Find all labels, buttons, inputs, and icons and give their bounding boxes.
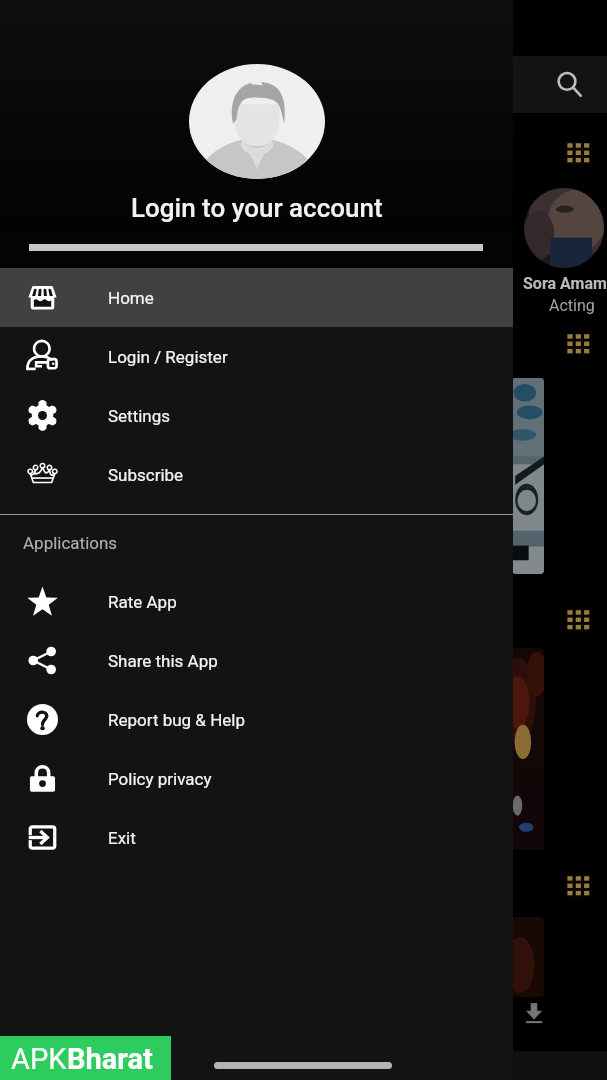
staticText: Login to your account: [131, 193, 383, 223]
staticText: Exit: [108, 828, 136, 848]
button[interactable]: Policy privacy: [0, 749, 513, 808]
staticText: Home: [108, 288, 154, 308]
staticText: Applications: [23, 533, 118, 553]
button[interactable]: Login / Register: [0, 327, 513, 386]
staticText: Report bug & Help: [108, 710, 245, 730]
staticText: Settings: [108, 406, 171, 426]
button[interactable]: APK: [0, 1036, 171, 1080]
staticText: Subscribe: [108, 465, 184, 485]
button[interactable]: Subscribe: [0, 445, 513, 504]
button[interactable]: Downloads: [525, 1002, 543, 1024]
staticText: Sora Amamiya: [523, 274, 607, 293]
staticText: Acting: [549, 296, 595, 315]
button[interactable]: Share this App: [0, 631, 513, 690]
staticText: Policy privacy: [108, 769, 212, 789]
staticText: APK: [11, 1042, 67, 1076]
button[interactable]: Rate App: [0, 572, 513, 631]
staticText: Rate App: [108, 592, 177, 612]
staticText: Login / Register: [108, 347, 228, 367]
button[interactable]: Exit: [0, 808, 513, 867]
button[interactable]: Report bug & Help: [0, 690, 513, 749]
staticText: Share this App: [108, 651, 218, 671]
button[interactable]: Search: [554, 69, 585, 100]
button[interactable]: Settings: [0, 386, 513, 445]
staticText: Bharat: [67, 1042, 153, 1076]
button[interactable]: Home: [0, 268, 513, 327]
